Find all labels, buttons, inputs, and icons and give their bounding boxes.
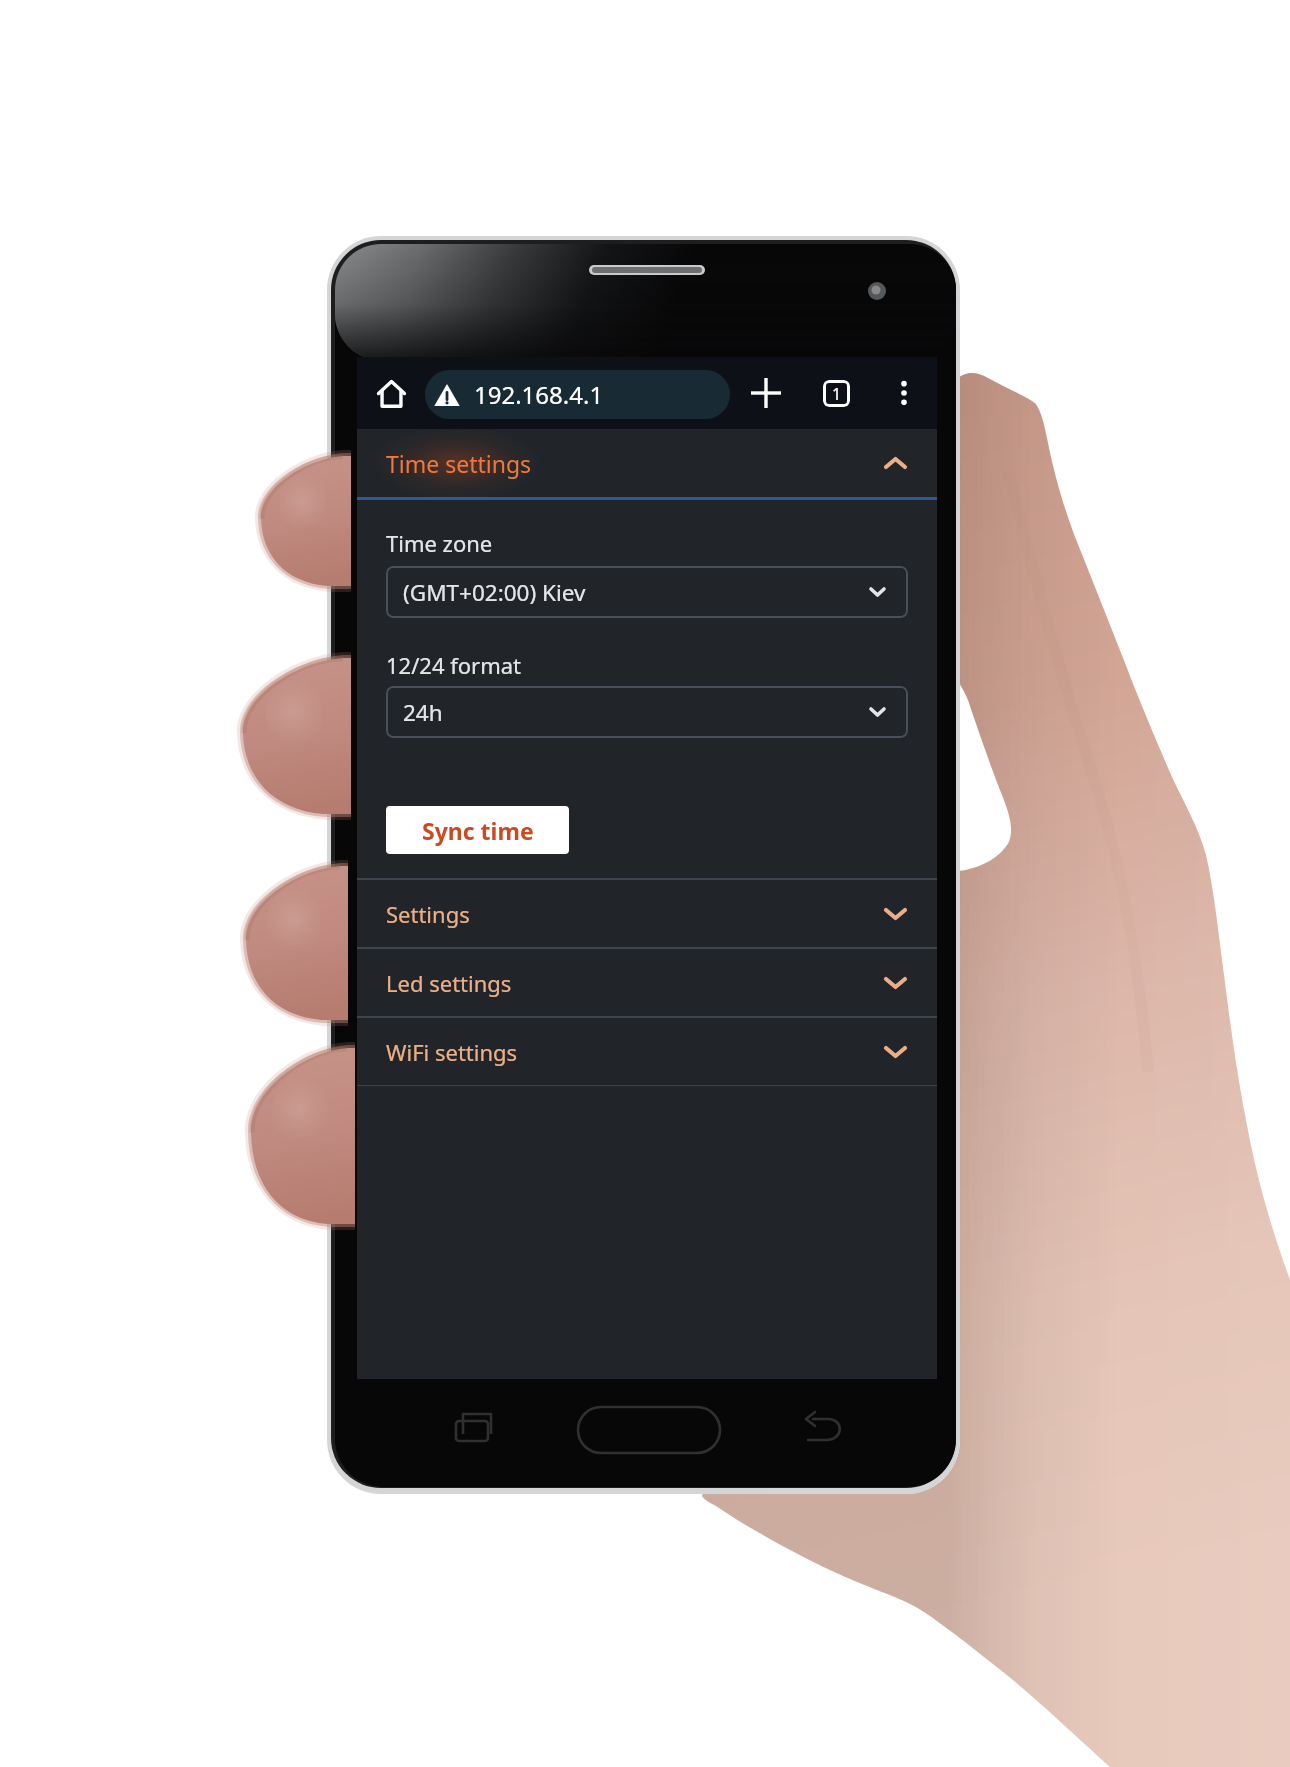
staticText: (GMT+02:00) Kiev bbox=[403, 577, 586, 608]
staticText: Sync time bbox=[422, 815, 534, 846]
staticText: Time zone bbox=[386, 528, 493, 558]
button[interactable]: WiFi settings bbox=[357, 1018, 937, 1085]
button[interactable]: Home bbox=[369, 371, 413, 415]
staticText: Settings bbox=[386, 899, 470, 929]
button[interactable]: New tab bbox=[744, 371, 788, 415]
button[interactable]: Time settings bbox=[357, 429, 937, 497]
staticText: Time settings bbox=[386, 448, 532, 479]
staticText: 1 bbox=[832, 383, 842, 405]
button[interactable]: Led settings bbox=[357, 949, 937, 1016]
button[interactable]: Settings bbox=[357, 880, 937, 947]
staticText: 192.168.4.1 bbox=[474, 378, 604, 411]
button[interactable]: Tabs bbox=[814, 371, 858, 415]
button[interactable]: (GMT+02:00) Kiev bbox=[386, 566, 908, 618]
staticText: WiFi settings bbox=[386, 1037, 518, 1067]
button[interactable]: Sync time bbox=[386, 806, 569, 854]
staticText: 12/24 format bbox=[386, 650, 522, 680]
staticText: 24h bbox=[403, 697, 443, 728]
staticText: Led settings bbox=[386, 968, 512, 998]
button[interactable]: 24h bbox=[386, 686, 908, 738]
button[interactable]: 192.168.4.1 bbox=[425, 370, 730, 419]
button[interactable]: More options bbox=[882, 371, 926, 415]
